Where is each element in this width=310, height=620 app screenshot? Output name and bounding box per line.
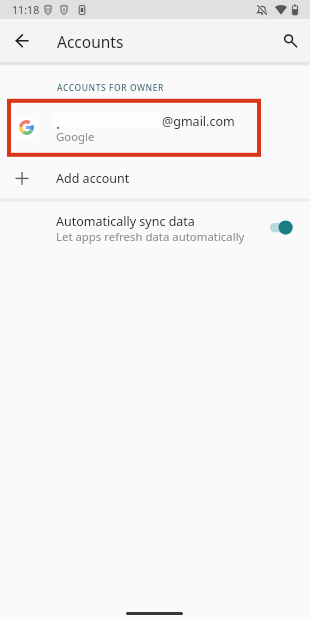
staticText: ACCOUNTS FOR OWNER: [57, 82, 164, 94]
staticText: 11:18: [12, 3, 40, 18]
staticText: @gmail.com: [162, 113, 235, 130]
button[interactable]: Automatically sync data: [0, 205, 310, 249]
staticText: Accounts: [57, 31, 124, 52]
button[interactable]: Back: [4, 23, 40, 59]
staticText: Google: [56, 129, 95, 145]
staticText: Automatically sync data: [56, 213, 195, 230]
staticText: Let apps refresh data automatically: [56, 229, 245, 245]
button[interactable]: @gmail.com: [0, 101, 310, 153]
button[interactable]: Search: [270, 23, 306, 59]
button[interactable]: Home gesture: [126, 612, 183, 615]
button[interactable]: Add account: [0, 160, 310, 196]
button[interactable]: Automatically sync data toggle: [266, 211, 300, 245]
staticText: Add account: [56, 170, 130, 187]
